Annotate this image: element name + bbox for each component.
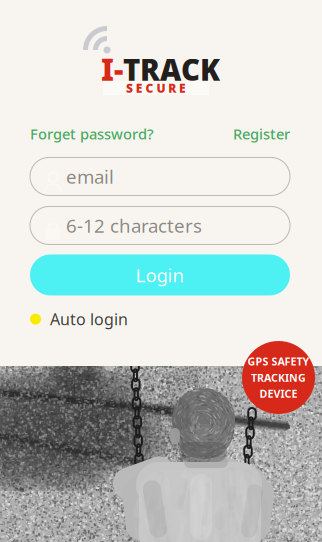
staticText: GPS SAFETY [247, 354, 309, 368]
staticText: Auto login [50, 308, 128, 330]
staticText: DEVICE [259, 387, 297, 401]
button[interactable]: Login [30, 254, 290, 295]
staticText: SECURE [126, 80, 186, 96]
staticText: Login [135, 263, 184, 287]
staticText: Register [233, 124, 290, 143]
staticText: TRACKING [251, 370, 306, 385]
staticText: TRACK [123, 50, 220, 89]
staticText: email [66, 164, 114, 189]
staticText: I- [101, 50, 123, 89]
button[interactable]: Forget password? [30, 124, 154, 143]
button[interactable]: Register [233, 124, 290, 143]
staticText: 6-12 characters [66, 213, 202, 238]
staticText: Forget password? [30, 124, 154, 143]
